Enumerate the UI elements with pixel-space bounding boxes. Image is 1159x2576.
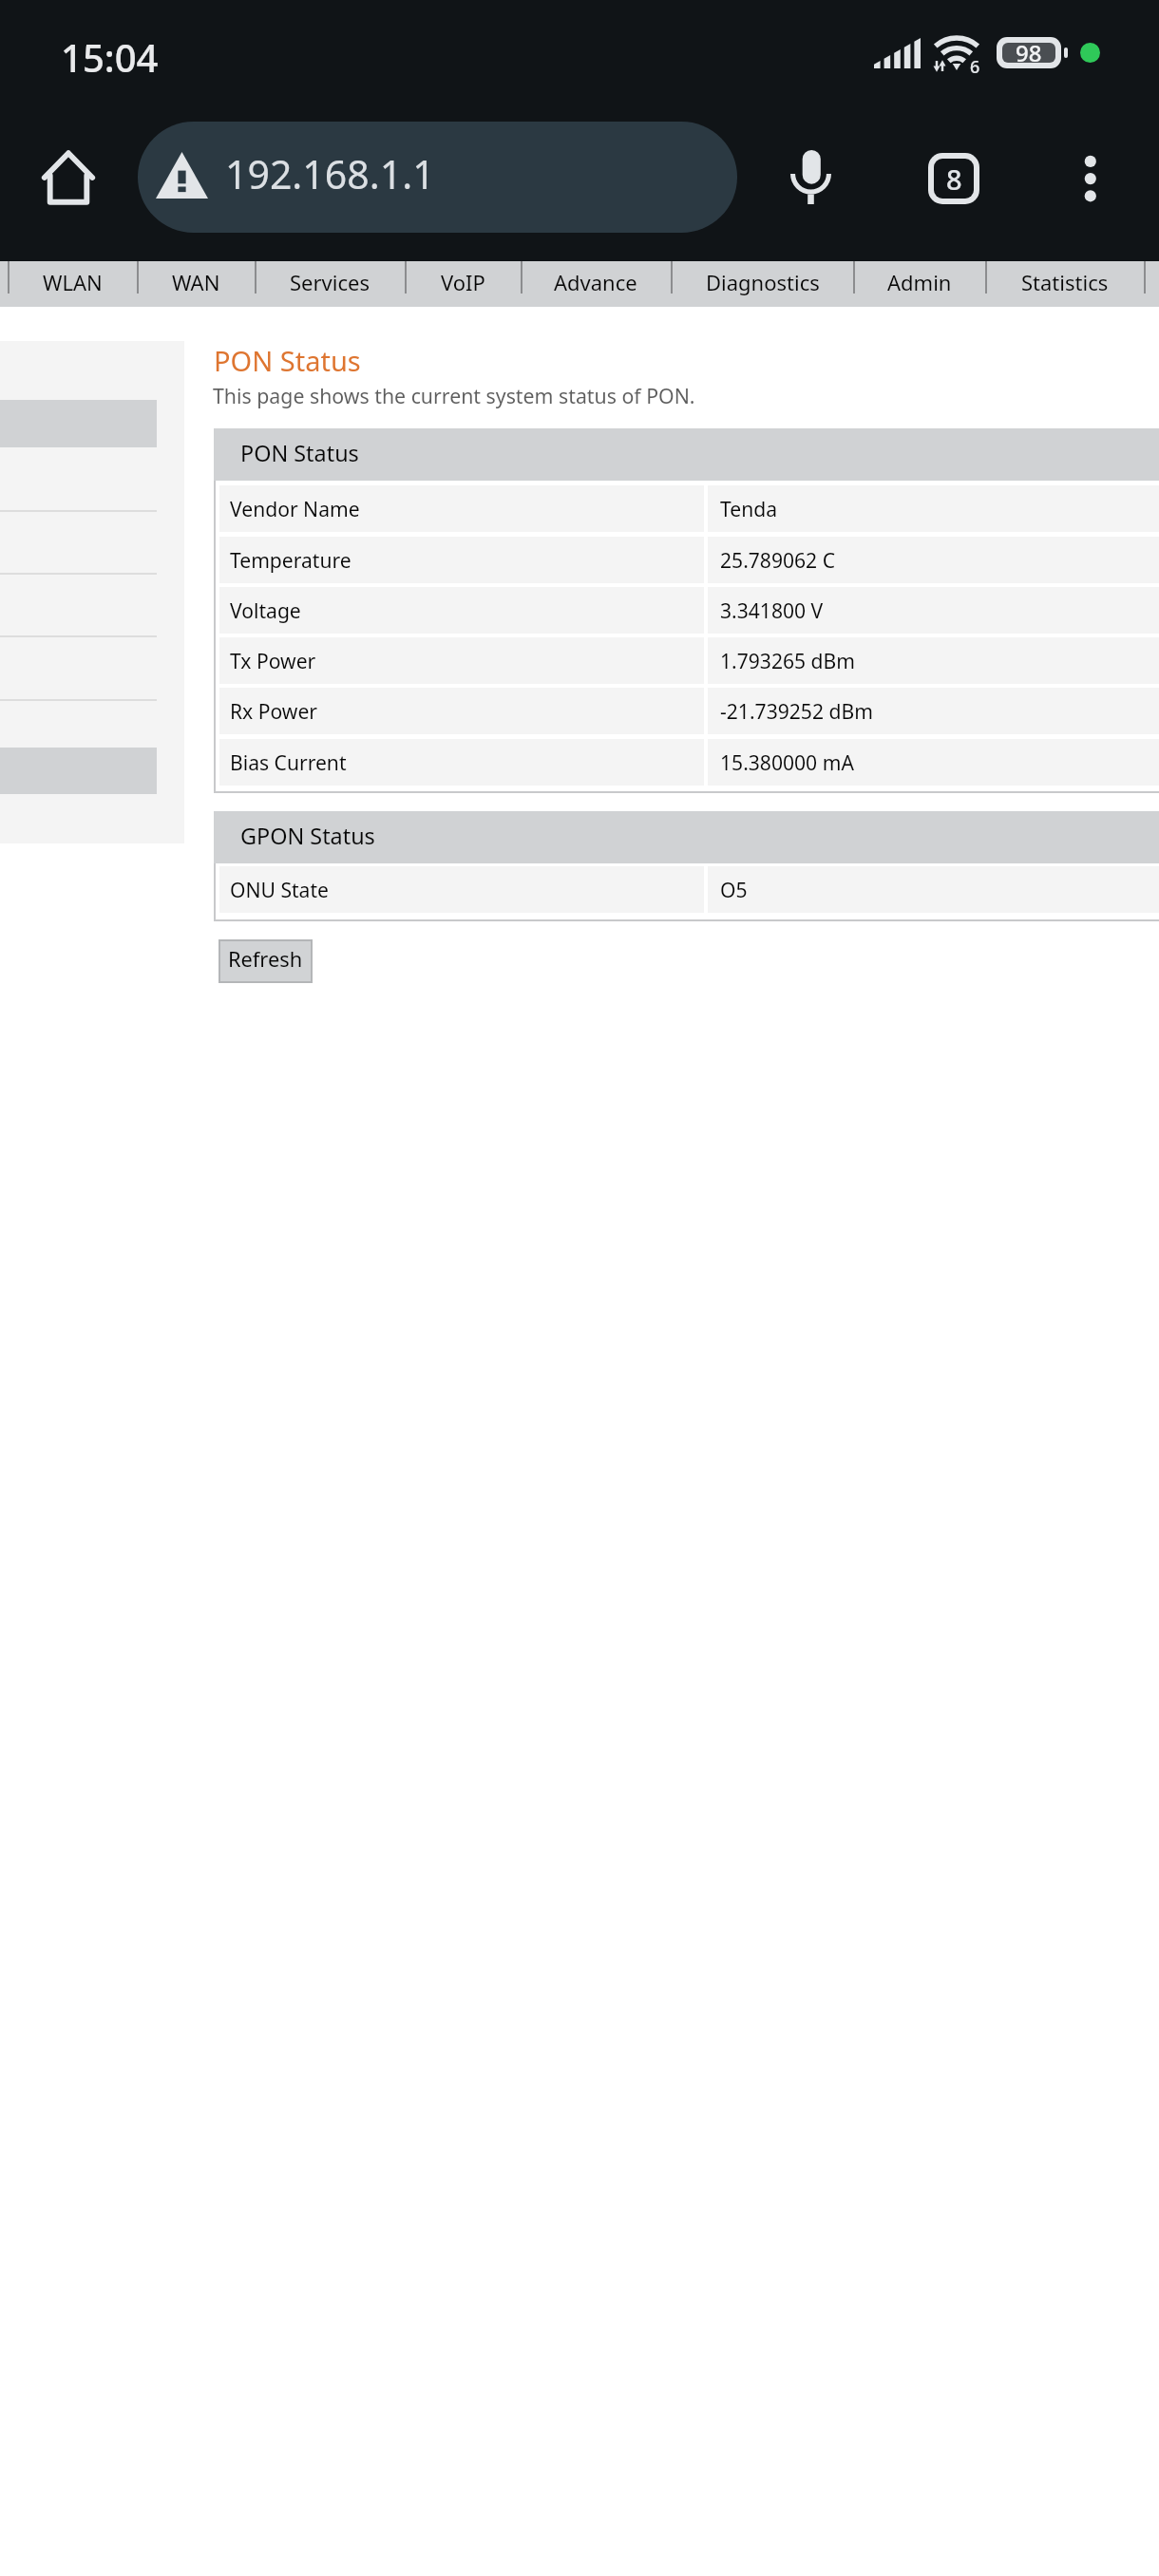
staticText: 192.168.1.1	[225, 147, 435, 200]
staticText: 15:04	[61, 31, 159, 83]
staticText: Bias Current	[230, 748, 347, 776]
button[interactable]: VoIP	[405, 261, 521, 307]
staticText: 8	[946, 161, 962, 198]
staticText: O5	[720, 876, 748, 903]
staticText: 15.380000 mA	[720, 748, 854, 776]
staticText: 1.793265 dBm	[720, 647, 856, 674]
staticText: Tx Power	[230, 647, 316, 674]
button[interactable]: 192.168.1.1	[138, 122, 737, 233]
staticText: GPON Status	[240, 821, 375, 851]
staticText: 6	[970, 55, 980, 79]
button[interactable]: Diagnostics	[671, 261, 854, 307]
staticText: Rx Power	[230, 697, 318, 725]
staticText: Refresh	[228, 945, 303, 974]
button[interactable]: WLAN	[8, 261, 137, 307]
button[interactable]: Advance	[521, 261, 671, 307]
staticText: VoIP	[441, 268, 485, 296]
staticText: Advance	[554, 268, 637, 296]
button[interactable]: More options	[1045, 126, 1136, 229]
button[interactable]: Voice search	[766, 124, 856, 230]
staticText: Vendor Name	[230, 495, 360, 522]
staticText: PON Status	[214, 342, 361, 379]
staticText: Temperature	[230, 546, 351, 574]
staticText: WLAN	[43, 268, 103, 296]
button[interactable]: Statistics	[985, 261, 1145, 307]
staticText: ONU State	[230, 876, 329, 903]
staticText: Tenda	[720, 495, 777, 522]
staticText: Services	[290, 268, 370, 296]
button[interactable]: Admin	[853, 261, 985, 307]
staticText: WAN	[172, 268, 220, 296]
staticText: Statistics	[1021, 268, 1109, 296]
button[interactable]: Refresh	[220, 941, 311, 981]
staticText: 98	[1016, 37, 1042, 68]
staticText: Voltage	[230, 597, 301, 624]
button[interactable]: WAN	[137, 261, 255, 307]
button[interactable]: Home	[21, 130, 116, 225]
staticText: Diagnostics	[706, 268, 820, 296]
staticText: 3.341800 V	[720, 597, 824, 624]
staticText: -21.739252 dBm	[720, 697, 873, 725]
staticText: 25.789062 C	[720, 546, 835, 574]
button[interactable]: Tabs	[902, 126, 1005, 229]
staticText: This page shows the current system statu…	[213, 382, 695, 409]
staticText: Admin	[887, 268, 952, 296]
button[interactable]: Services	[255, 261, 405, 307]
staticText: PON Status	[240, 438, 359, 468]
